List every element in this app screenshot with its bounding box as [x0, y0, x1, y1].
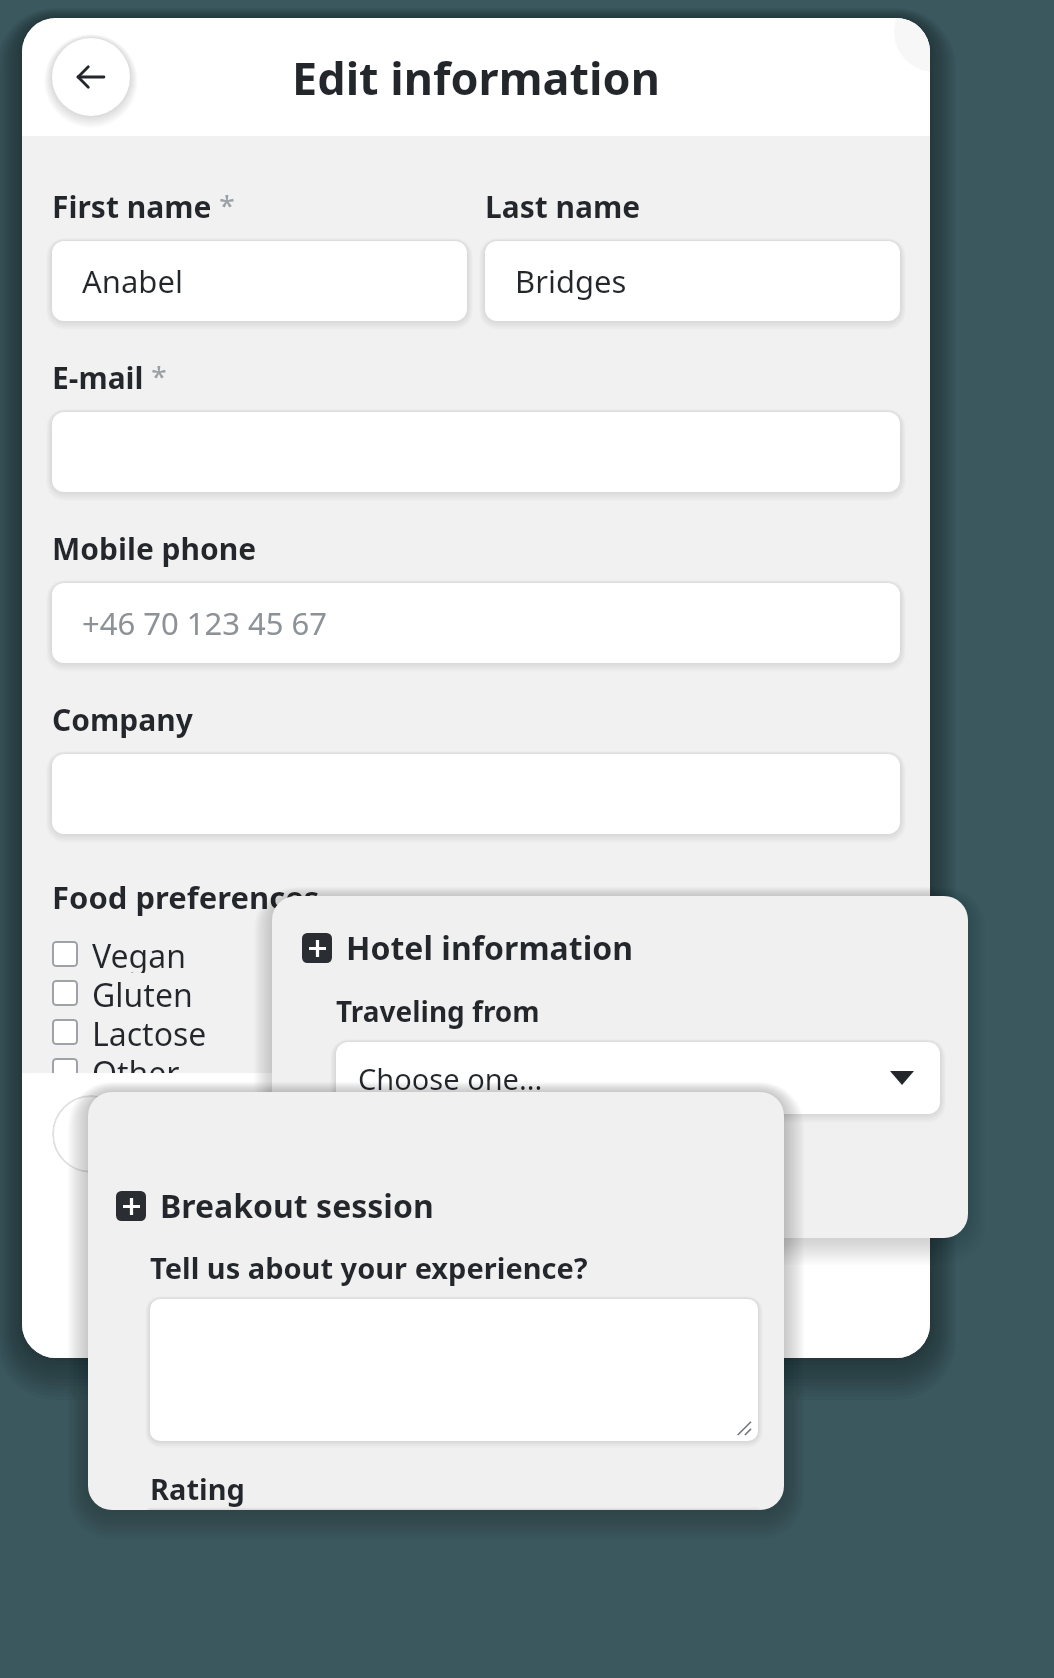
staticText: Tell us about your experience? — [150, 1248, 588, 1287]
staticText: Hotel information — [346, 926, 634, 970]
staticText: Mobile phone — [52, 528, 257, 569]
button[interactable]: Lactose — [52, 1012, 292, 1051]
staticText: Rating — [150, 1469, 245, 1508]
button[interactable]: Breakout session — [116, 1184, 434, 1228]
staticText: Edit information — [292, 47, 660, 108]
staticText: Other — [92, 1051, 180, 1090]
staticText: Choose one... — [358, 1059, 543, 1098]
staticText: Anabel — [82, 260, 183, 302]
button[interactable]: Back — [52, 38, 130, 116]
staticText: Last name — [485, 186, 641, 227]
button[interactable]: +46 70 123 45 67 — [52, 583, 900, 663]
button[interactable]: Anabel — [52, 241, 467, 321]
button[interactable]: Choose one... — [336, 1042, 940, 1114]
button[interactable]: Vegan — [52, 934, 292, 973]
staticText: Gluten — [92, 973, 193, 1012]
button[interactable]: Gluten — [52, 973, 292, 1012]
staticText: Food preferences — [52, 876, 320, 918]
button[interactable]: Bridges — [485, 241, 900, 321]
staticText: +46 70 123 45 67 — [82, 602, 328, 644]
staticText: Company — [52, 699, 193, 740]
staticText: Traveling from — [336, 992, 540, 1030]
button[interactable]: More options — [894, 18, 930, 72]
button[interactable]: Hotel information — [302, 926, 634, 970]
staticText: Vegan — [92, 934, 187, 973]
button[interactable]: Other — [52, 1051, 292, 1090]
staticText: * — [212, 186, 235, 224]
staticText: * — [144, 357, 167, 395]
staticText: E-mail — [52, 357, 144, 398]
staticText: Lactose — [92, 1012, 207, 1051]
staticText: Breakout session — [160, 1184, 434, 1228]
staticText: Bridges — [515, 260, 627, 302]
staticText: First name — [52, 186, 212, 227]
button[interactable]: Add — [52, 1095, 130, 1173]
